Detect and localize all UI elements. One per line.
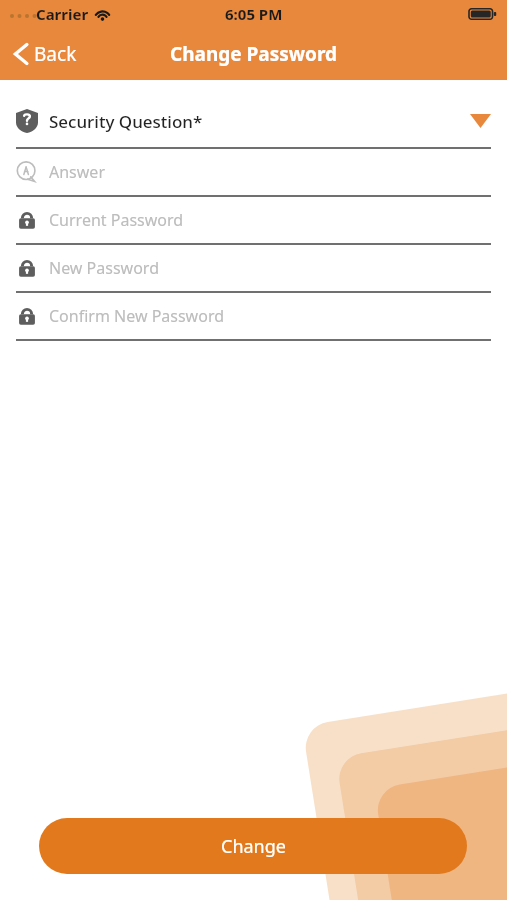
button[interactable]: Answer [0, 149, 507, 195]
staticText: 6:05 PM [225, 4, 283, 24]
staticText: Carrier [36, 4, 89, 24]
staticText: Change [221, 834, 286, 859]
button[interactable]: Current Password [0, 197, 507, 243]
button[interactable]: New Password [0, 245, 507, 291]
button[interactable]: Change [39, 818, 467, 874]
staticText: Answer [49, 161, 105, 183]
button[interactable]: Security Question* [0, 106, 507, 136]
staticText: New Password [49, 257, 159, 279]
staticText: Change Password [170, 41, 338, 67]
staticText: Current Password [49, 209, 184, 231]
staticText: Confirm New Password [49, 305, 225, 327]
button[interactable]: Confirm New Password [0, 293, 507, 339]
staticText: Back [34, 41, 77, 67]
staticText: Security Question* [49, 110, 203, 133]
button[interactable]: Back [0, 35, 89, 73]
other: Battery [469, 7, 497, 21]
